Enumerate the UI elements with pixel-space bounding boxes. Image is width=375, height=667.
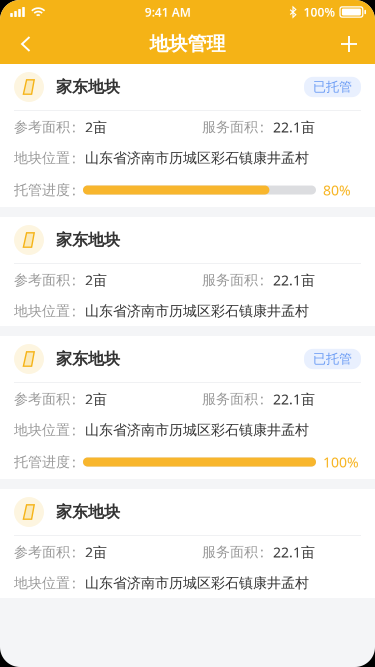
button[interactable]: 返回 bbox=[3, 24, 49, 64]
staticText: 80% bbox=[323, 180, 351, 200]
staticText: : bbox=[260, 542, 264, 562]
staticText: 家东地块 bbox=[56, 502, 120, 522]
staticText: 家东地块 bbox=[56, 77, 120, 97]
staticText: 100% bbox=[303, 4, 335, 20]
staticText: 山东省济南市历城区彩石镇康井孟村 bbox=[85, 302, 309, 320]
staticText: : bbox=[72, 180, 76, 200]
staticText: : bbox=[260, 117, 264, 137]
staticText: 托管进度 bbox=[14, 453, 70, 471]
button[interactable]: 添加地块 bbox=[326, 24, 372, 64]
staticText: 地块位置 bbox=[14, 302, 70, 320]
button[interactable]: 家东地块 bbox=[0, 489, 375, 598]
staticText: 100% bbox=[323, 452, 359, 472]
button[interactable]: 家东地块 bbox=[0, 336, 375, 479]
staticText: 已托管 bbox=[313, 351, 352, 367]
staticText: 山东省济南市历城区彩石镇康井孟村 bbox=[85, 149, 309, 167]
staticText: : bbox=[72, 389, 76, 409]
staticText: 参考面积 bbox=[14, 118, 70, 136]
staticText: 2亩 bbox=[85, 117, 107, 137]
staticText: 服务面积 bbox=[202, 118, 258, 136]
button[interactable]: 家东地块 bbox=[0, 64, 375, 207]
staticText: : bbox=[72, 452, 76, 472]
staticText: 2亩 bbox=[85, 270, 107, 290]
staticText: 9:41 AM bbox=[145, 4, 191, 20]
staticText: : bbox=[72, 148, 76, 168]
staticText: 家东地块 bbox=[56, 230, 120, 250]
staticText: 地块位置 bbox=[14, 421, 70, 439]
staticText: 服务面积 bbox=[202, 390, 258, 408]
staticText: 服务面积 bbox=[202, 543, 258, 561]
staticText: 2亩 bbox=[85, 542, 107, 562]
staticText: 服务面积 bbox=[202, 271, 258, 289]
staticText: 22.1亩 bbox=[273, 270, 315, 290]
staticText: : bbox=[72, 573, 76, 593]
staticText: 地块位置 bbox=[14, 149, 70, 167]
staticText: 22.1亩 bbox=[273, 117, 315, 137]
staticText: 22.1亩 bbox=[273, 389, 315, 409]
staticText: 山东省济南市历城区彩石镇康井孟村 bbox=[85, 574, 309, 592]
staticText: : bbox=[72, 117, 76, 137]
staticText: 22.1亩 bbox=[273, 542, 315, 562]
staticText: 地块位置 bbox=[14, 574, 70, 592]
staticText: : bbox=[72, 542, 76, 562]
staticText: : bbox=[72, 420, 76, 440]
staticText: 参考面积 bbox=[14, 390, 70, 408]
staticText: 家东地块 bbox=[56, 349, 120, 369]
staticText: 地块管理 bbox=[149, 32, 225, 56]
staticText: : bbox=[260, 389, 264, 409]
staticText: : bbox=[72, 270, 76, 290]
staticText: 托管进度 bbox=[14, 181, 70, 199]
staticText: : bbox=[260, 270, 264, 290]
button[interactable]: 家东地块 bbox=[0, 217, 375, 326]
staticText: 山东省济南市历城区彩石镇康井孟村 bbox=[85, 421, 309, 439]
staticText: 2亩 bbox=[85, 389, 107, 409]
staticText: 已托管 bbox=[313, 79, 352, 95]
staticText: 参考面积 bbox=[14, 543, 70, 561]
staticText: : bbox=[72, 301, 76, 321]
staticText: 参考面积 bbox=[14, 271, 70, 289]
